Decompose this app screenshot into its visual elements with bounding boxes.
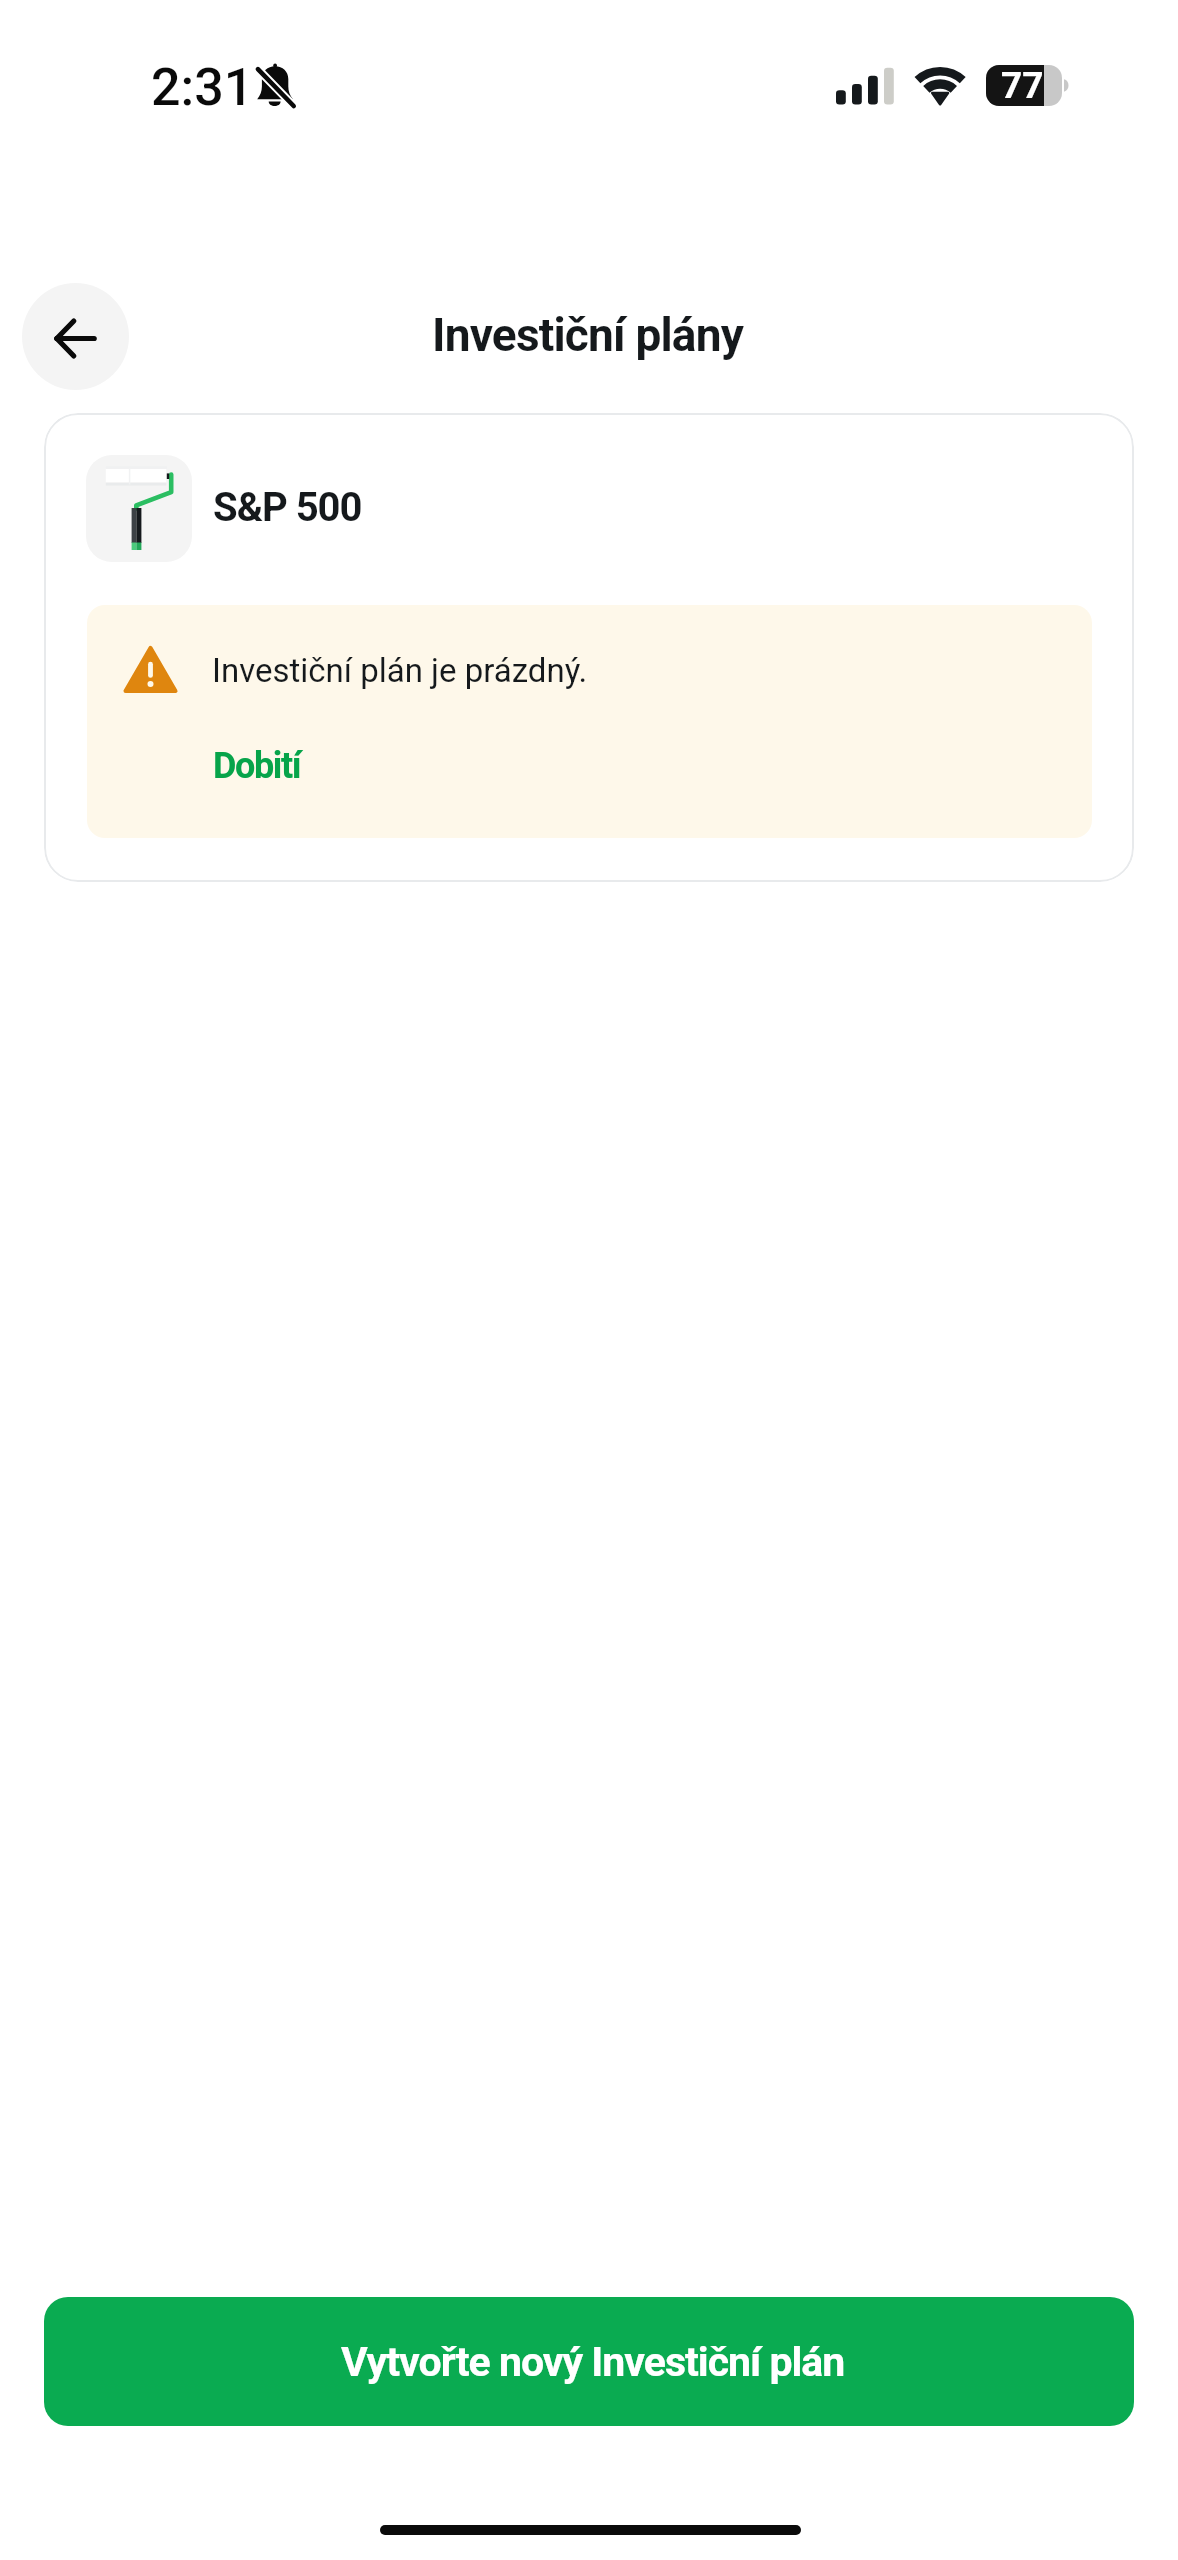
staticText: Investiční plán je prázdný. <box>212 651 588 690</box>
staticText: Vytvořte nový Investiční plán <box>341 2338 845 2386</box>
staticText: Investiční plány <box>432 308 743 362</box>
staticText: Dobití <box>213 745 301 787</box>
button[interactable]: Back <box>22 283 129 390</box>
button[interactable]: Dobití <box>213 745 301 787</box>
button[interactable]: Vytvořte nový Investiční plán <box>44 2297 1134 2426</box>
button[interactable]: S&P 500 <box>44 413 1134 882</box>
staticText: 2:31 <box>151 57 254 118</box>
staticText: S&P 500 <box>213 484 362 531</box>
staticText: 77 <box>1001 64 1044 107</box>
